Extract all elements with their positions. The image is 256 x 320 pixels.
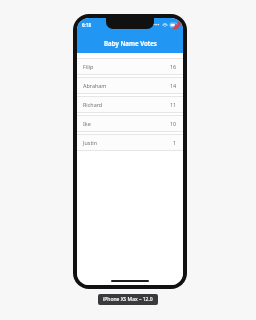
staticText: Ike <box>83 120 91 127</box>
staticText: Filip <box>83 63 94 70</box>
staticText: 10 <box>170 120 177 127</box>
button[interactable]: Filip <box>77 58 183 75</box>
staticText: 1 <box>173 139 177 146</box>
button[interactable]: Richard <box>77 96 183 113</box>
staticText: 6:18 <box>82 22 91 28</box>
staticText: 16 <box>170 63 177 70</box>
button[interactable]: Abraham <box>77 77 183 94</box>
staticText: iPhone XS Max – 12.0 <box>103 296 153 303</box>
staticText: Baby Name Votes <box>104 39 157 47</box>
staticText: 14 <box>170 82 177 89</box>
staticText: Richard <box>83 101 103 108</box>
staticText: Justin <box>83 139 98 146</box>
button[interactable]: Ike <box>77 115 183 132</box>
button[interactable]: Justin <box>77 134 183 151</box>
staticText: Abraham <box>83 82 107 89</box>
staticText: 11 <box>170 101 177 108</box>
